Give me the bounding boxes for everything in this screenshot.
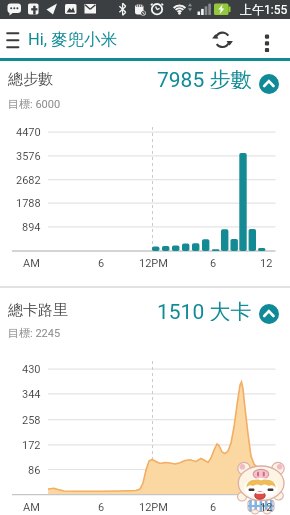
staticText: 6 [98,257,105,270]
staticText: 12PM [139,501,168,514]
button[interactable] [0,23,26,54]
staticText: 12 [260,257,273,270]
staticText: 344 [22,388,41,401]
staticText: 上午1:55 [240,2,288,17]
staticText: 1510 大卡 [157,299,252,321]
button[interactable] [0,291,290,343]
staticText: 2682 [16,174,41,187]
button[interactable] [259,74,279,94]
staticText: 86 [28,464,41,477]
staticText: 894 [22,221,41,234]
staticText: AM [23,257,40,270]
staticText: 目標: 2245 [8,326,61,340]
staticText: 6 [210,257,217,270]
staticText: 3576 [16,150,41,163]
staticText: 4470 [16,126,41,139]
staticText: 總卡路里 [8,301,68,320]
staticText: 目標: 6000 [8,97,61,111]
staticText: 6 [210,501,217,514]
staticText: 430 [22,363,41,376]
staticText: 172 [22,439,41,452]
staticText: 6 [98,501,105,514]
staticText: 258 [22,414,41,427]
staticText: Hi, 麥兜小米 [28,29,118,50]
button[interactable] [253,23,281,54]
staticText: AM [23,501,40,514]
staticText: 12 [260,501,273,514]
button[interactable] [208,25,237,54]
staticText: 1788 [16,197,41,210]
button[interactable] [0,62,290,114]
staticText: 12PM [139,257,168,270]
staticText: 7985 步數 [157,67,252,89]
staticText: 總步數 [8,70,53,89]
button[interactable] [259,304,279,324]
